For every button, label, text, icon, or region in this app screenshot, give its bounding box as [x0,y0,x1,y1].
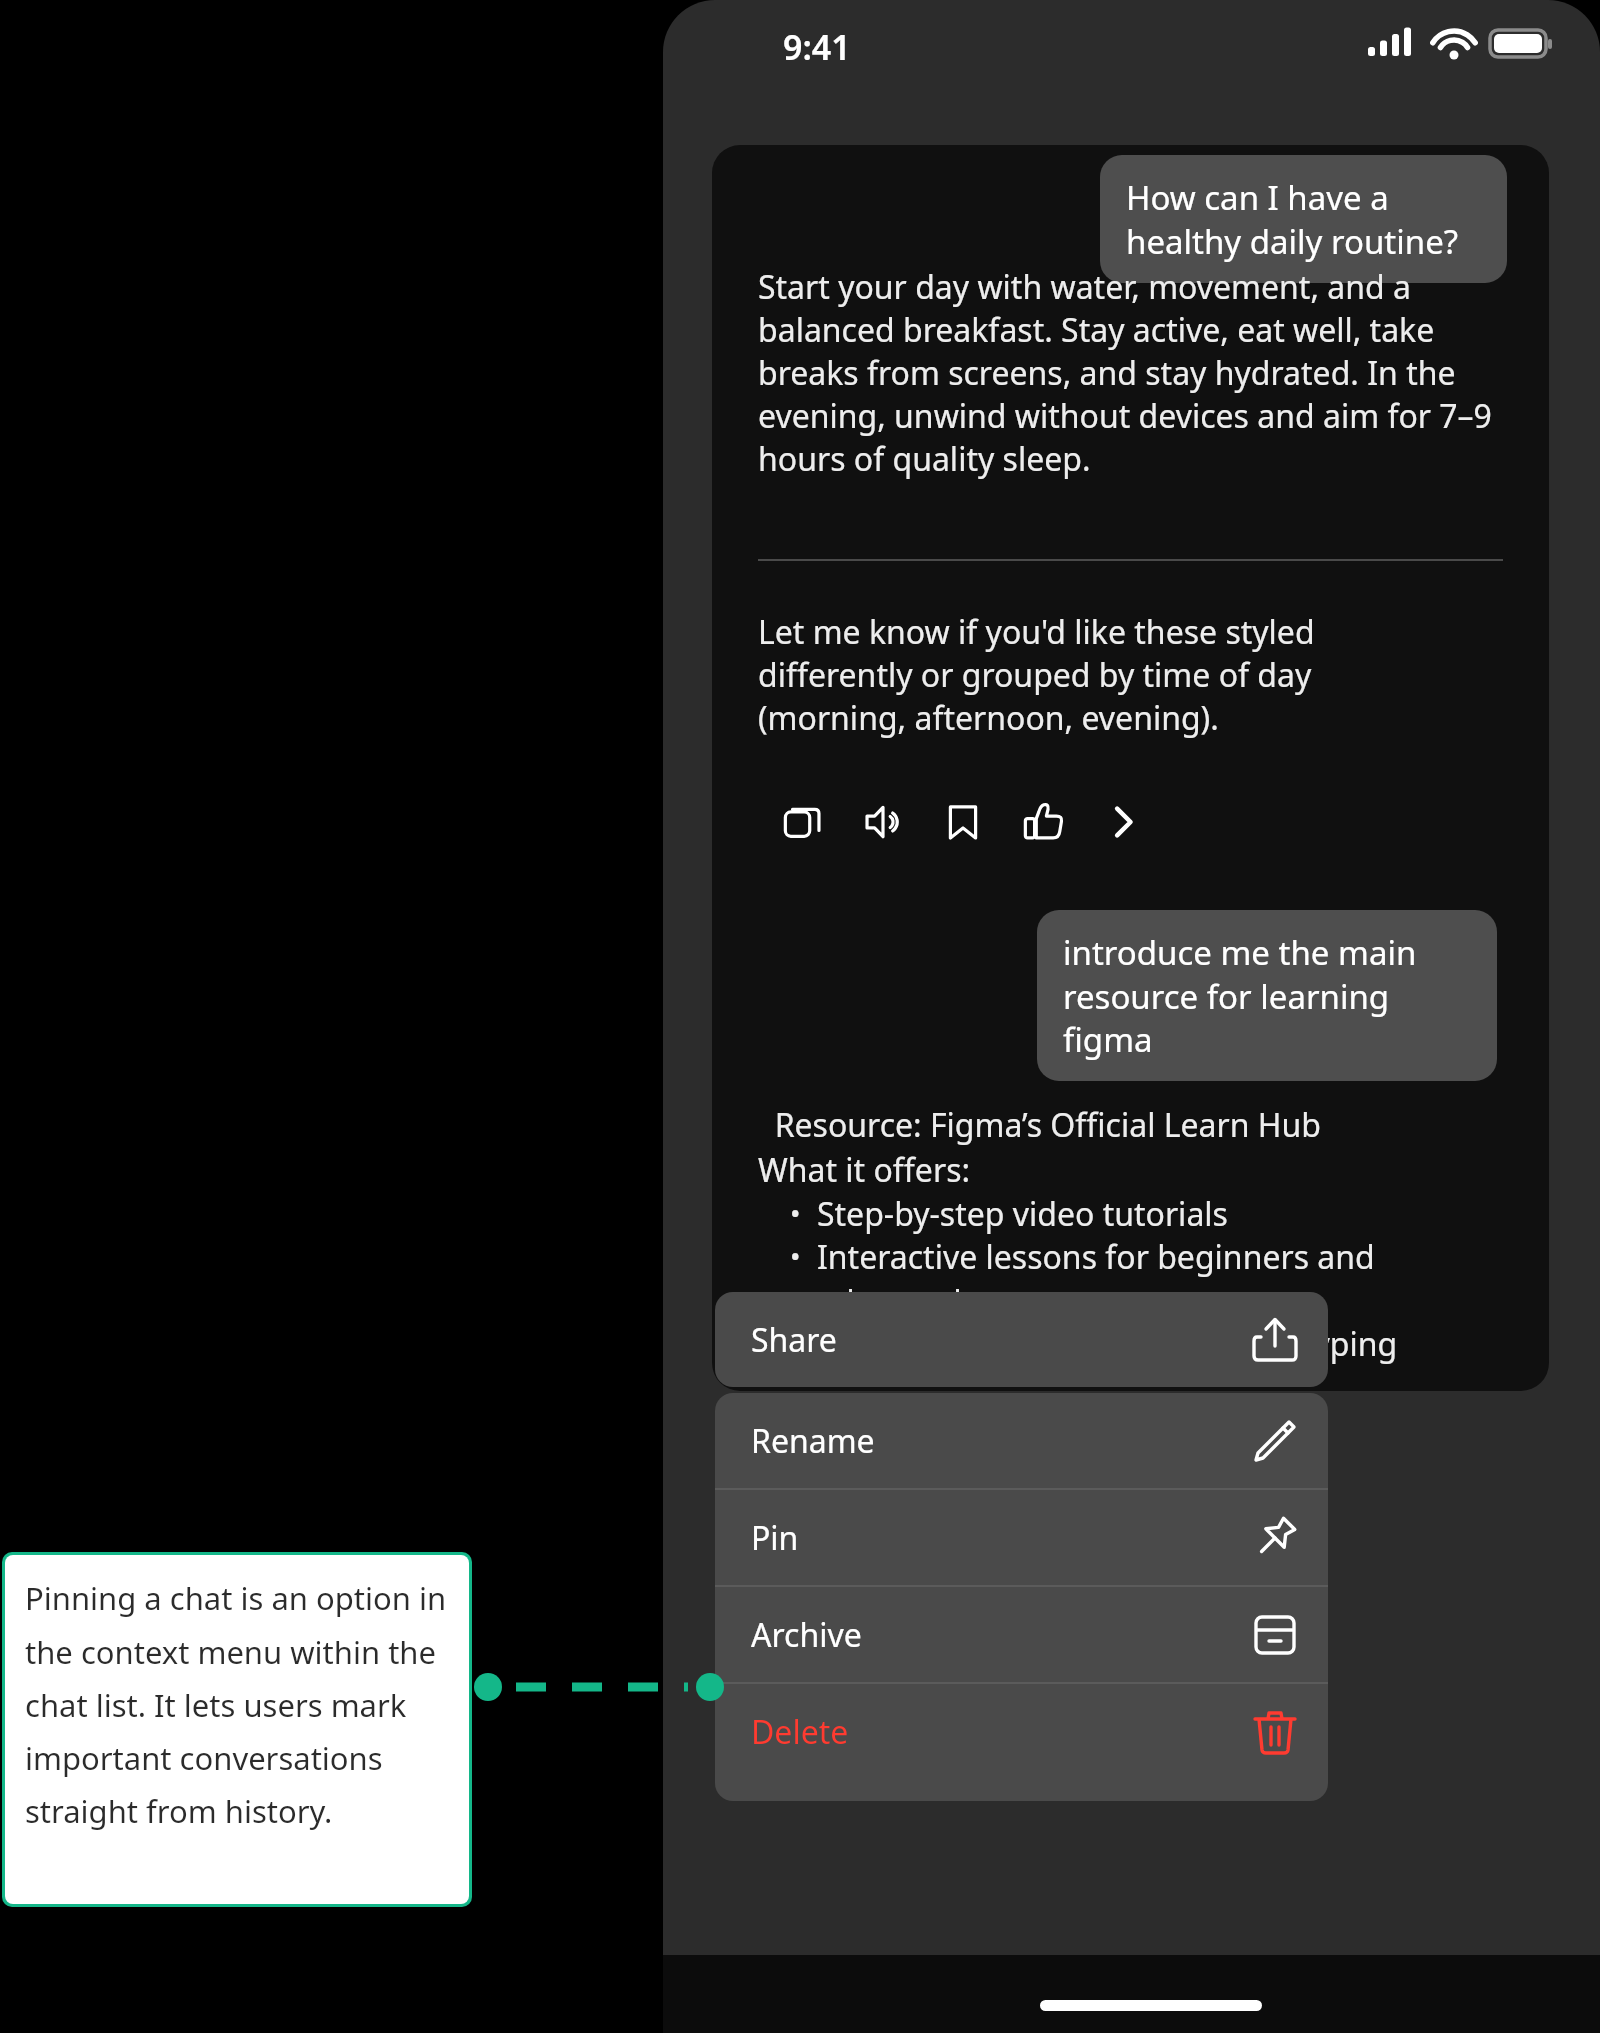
staticText: Pin [751,1516,799,1560]
staticText: Step-by-step video tutorials [817,1192,1228,1236]
staticText: Interactive lessons for beginners and ad… [817,1235,1375,1323]
staticText: introduce me the main resource for learn… [1063,930,1417,1061]
button[interactable]: Pinning a chat is an option in the conte… [5,1555,469,1904]
staticText: Let me know if you'd like these styled d… [758,610,1503,739]
staticText: Start your day with water, movement, and… [758,265,1503,480]
staticText: • [790,1324,801,1362]
staticText: Pinning a chat is an option in the conte… [25,1577,455,1832]
staticText: Design system guides and prototyping [817,1322,1398,1366]
staticText: 9:41 [783,24,851,70]
button[interactable]: Delete [715,1684,1328,1779]
staticText: Rename [751,1419,875,1463]
button[interactable]: Read aloud [854,793,912,851]
button[interactable]: introduce me the main resource for learn… [1037,910,1497,1081]
staticText: Resource: Figma’s Official Learn Hub Wha… [758,1103,1518,1191]
button[interactable]: Share [715,1292,1328,1387]
staticText: • [790,1237,801,1275]
button[interactable]: Pin [715,1490,1328,1585]
staticText: • [790,1194,801,1232]
button[interactable]: How can I have a healthy daily routine? [1100,155,1507,283]
staticText: Archive [751,1613,862,1657]
staticText: Delete [751,1710,849,1754]
button[interactable]: Rename [715,1393,1328,1488]
staticText: Share [751,1318,837,1362]
button[interactable]: Like [1014,793,1072,851]
staticText: How can I have a healthy daily routine? [1126,175,1459,263]
button[interactable]: Archive [715,1587,1328,1682]
button[interactable]: Copy [774,793,832,851]
button[interactable]: More [1094,793,1152,851]
button[interactable]: Bookmark [934,793,992,851]
